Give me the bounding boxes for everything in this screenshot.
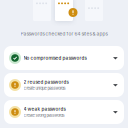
staticText: Create unique passwords <box>23 86 65 91</box>
staticText: No compromised passwords <box>23 55 86 61</box>
staticText: 2 reused passwords <box>23 79 68 85</box>
button[interactable]: No compromised passwords <box>4 46 124 70</box>
button[interactable]: 4 weak passwords <box>4 100 124 124</box>
button[interactable]: 2 reused passwords <box>4 73 124 97</box>
staticText: Create strong passwords <box>23 113 64 118</box>
staticText: 4 weak passwords <box>23 106 65 112</box>
staticText: Passwords checked for 64 sites & apps <box>20 31 107 37</box>
